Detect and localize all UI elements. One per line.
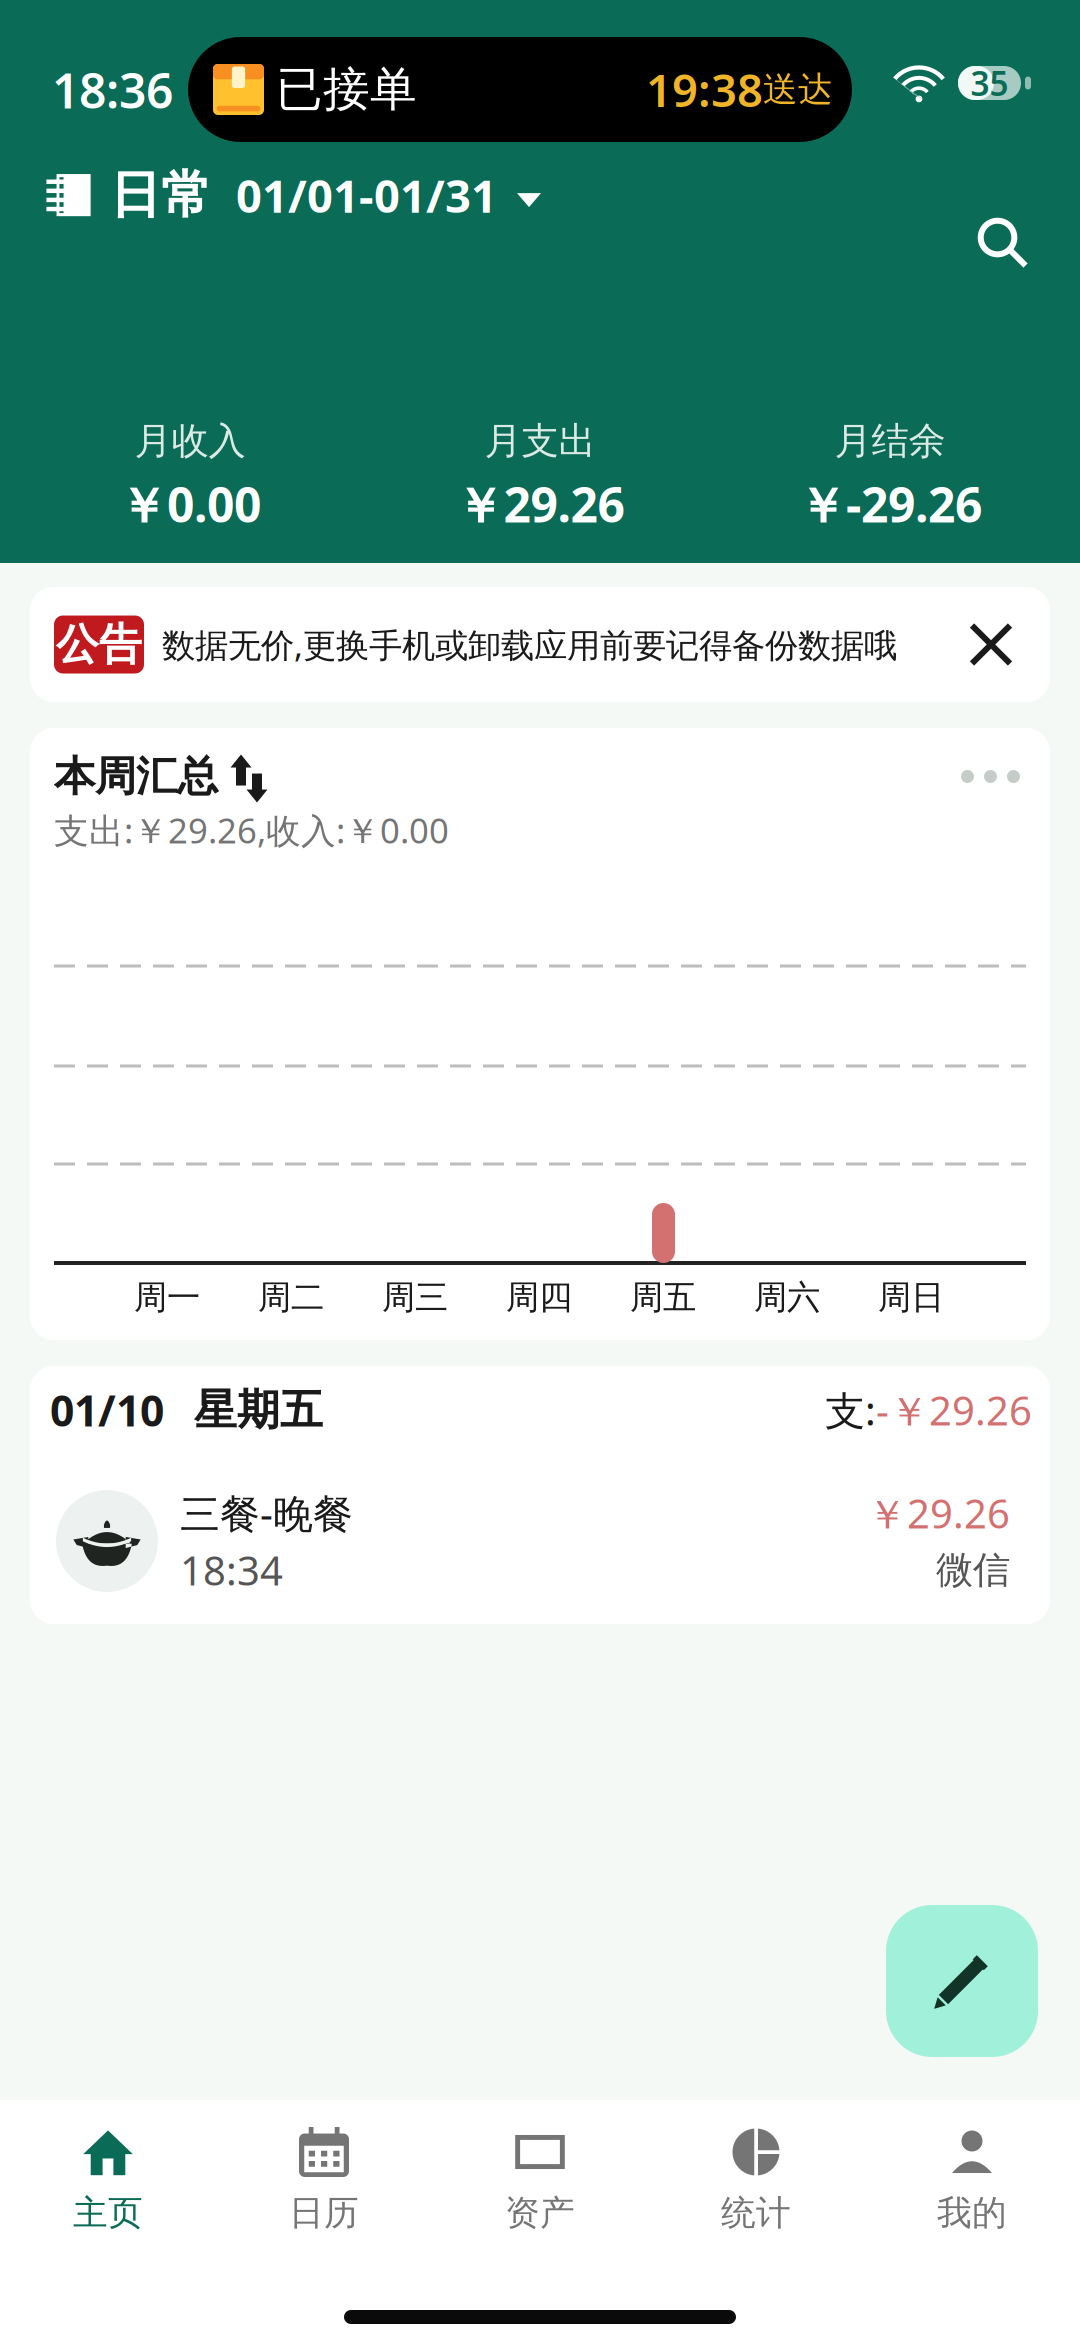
staticText: 资产 <box>505 2192 575 2234</box>
staticText: 周五 <box>630 1277 696 1318</box>
button[interactable]: 日历 <box>216 2118 432 2240</box>
staticText: 周四 <box>506 1277 572 1318</box>
staticText: 月收入 <box>134 418 245 464</box>
button[interactable]: More <box>941 750 1040 803</box>
staticText: 送达 <box>763 68 833 111</box>
staticText: 周六 <box>754 1277 820 1318</box>
staticText: 01/10 <box>50 1382 164 1438</box>
staticText: ￥29.26 <box>867 1486 1010 1540</box>
staticText: ￥0.00 <box>119 472 261 536</box>
staticText: 日历 <box>289 2192 359 2234</box>
staticText: 周三 <box>382 1277 448 1318</box>
staticText: 统计 <box>721 2192 791 2234</box>
staticText: 微信 <box>936 1547 1010 1593</box>
button[interactable]: 统计 <box>648 2118 864 2240</box>
staticText: 日常 <box>110 164 212 226</box>
button[interactable]: 三餐-晚餐 <box>30 1366 1050 1624</box>
button[interactable]: 我的 <box>864 2118 1080 2240</box>
staticText: 星期五 <box>194 1384 323 1436</box>
button[interactable]: Dismiss announcement <box>956 609 1026 679</box>
staticText: 月结余 <box>834 418 945 464</box>
staticText: 三餐-晚餐 <box>180 1486 353 1539</box>
staticText: 18:36 <box>52 58 173 122</box>
staticText: 周日 <box>878 1277 944 1318</box>
staticText: 周二 <box>258 1277 324 1318</box>
staticText: 01/01-01/31 <box>236 165 497 225</box>
staticText: -￥29.26 <box>876 1383 1032 1437</box>
staticText: 月支出 <box>484 418 595 464</box>
button[interactable]: Add record <box>886 1905 1038 2057</box>
staticText: ￥-29.26 <box>798 472 982 536</box>
button[interactable]: 主页 <box>0 2118 216 2240</box>
button[interactable]: 资产 <box>432 2118 648 2240</box>
staticText: 35 <box>970 61 1008 105</box>
button[interactable]: 日常 <box>0 152 541 238</box>
staticText: 19:38 <box>646 59 763 120</box>
staticText: ￥29.26 <box>455 472 624 536</box>
staticText: 周一 <box>134 1277 200 1318</box>
button[interactable]: Search <box>952 192 1052 292</box>
staticText: 支: <box>825 1383 876 1436</box>
staticText: 数据无价,更换手机或卸载应用前要记得备份数据哦 <box>162 622 897 667</box>
staticText: 已接单 <box>276 61 417 118</box>
staticText: 我的 <box>937 2192 1007 2234</box>
staticText: 支出:￥29.26,收入:￥0.00 <box>54 807 449 853</box>
staticText: 主页 <box>73 2192 143 2234</box>
staticText: 18:34 <box>180 1543 283 1596</box>
staticText: 公告 <box>56 618 142 671</box>
staticText: 本周汇总 <box>54 751 218 802</box>
